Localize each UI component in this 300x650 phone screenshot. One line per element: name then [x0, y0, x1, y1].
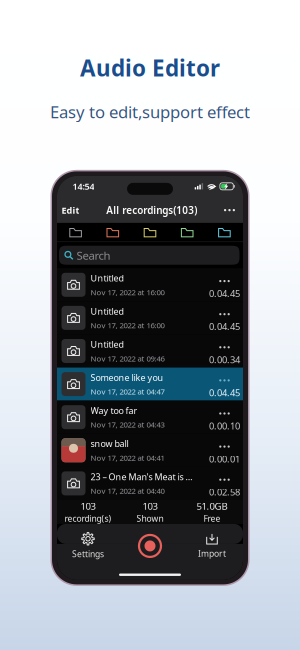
staticText: Nov 17, 2022 at 04:41	[90, 453, 164, 463]
staticText: 14:54	[72, 180, 94, 192]
staticText: 51.0GB	[196, 500, 227, 512]
button[interactable]: More options	[221, 199, 238, 221]
button[interactable]: 23 – One Man's Meat is A…	[57, 467, 243, 500]
staticText: 103	[80, 500, 95, 512]
staticText: 0.02.58	[209, 486, 240, 498]
staticText: Free	[203, 513, 220, 524]
staticText: 0.04.45	[209, 287, 240, 300]
staticText: 0.00.10	[209, 420, 240, 432]
staticText: snow ball	[90, 438, 128, 450]
staticText: 0.00.01	[209, 453, 240, 465]
staticText: 0.00.34	[209, 353, 240, 366]
button[interactable]: snow ball	[57, 434, 243, 467]
staticText: 0.04.45	[209, 320, 240, 333]
staticText: Nov 17, 2022 at 04:43	[90, 419, 164, 430]
button[interactable]: Folder	[94, 223, 131, 242]
button[interactable]: Folder	[131, 223, 169, 242]
button[interactable]: Way too far	[57, 401, 243, 434]
button[interactable]: Settings	[57, 524, 119, 568]
button[interactable]: Folder	[206, 223, 243, 242]
staticText: Import	[198, 548, 226, 559]
staticText: All recordings(103)	[106, 204, 197, 217]
button[interactable]: Untitled	[57, 334, 243, 367]
staticText: Nov 17, 2022 at 09:46	[90, 353, 164, 364]
staticText: Nov 17, 2022 at 16:00	[90, 287, 164, 297]
staticText: Nov 17, 2022 at 16:00	[90, 320, 164, 330]
staticText: Shown	[136, 513, 163, 524]
button[interactable]: Search	[59, 246, 239, 265]
staticText: Audio Editor	[80, 53, 220, 83]
staticText: Untitled	[90, 305, 123, 317]
staticText: Someone like you	[90, 371, 163, 383]
staticText: Nov 17, 2022 at 04:40	[90, 486, 164, 496]
staticText: Way too far	[90, 405, 137, 416]
staticText: Easy to edit,support effect	[50, 101, 250, 123]
staticText: 103	[142, 500, 157, 512]
staticText: Settings	[72, 548, 104, 560]
button[interactable]: Edit	[58, 199, 82, 221]
staticText: Search	[76, 248, 110, 263]
staticText: Untitled	[90, 338, 123, 350]
staticText: Untitled	[90, 272, 123, 284]
staticText: 23 – One Man's Meat is A…	[90, 471, 197, 483]
staticText: Edit	[61, 204, 79, 216]
button[interactable]: Folder	[57, 223, 94, 242]
button[interactable]: Untitled	[57, 301, 243, 334]
button[interactable]: Folder	[169, 223, 206, 242]
staticText: Nov 17, 2022 at 04:47	[90, 386, 164, 397]
button[interactable]: Record	[119, 524, 181, 568]
button[interactable]: Import	[181, 524, 243, 568]
button[interactable]: Someone like you	[57, 367, 243, 401]
staticText: 0.04.45	[209, 386, 240, 399]
staticText: recording(s)	[64, 513, 111, 524]
button[interactable]: Untitled	[57, 268, 243, 301]
